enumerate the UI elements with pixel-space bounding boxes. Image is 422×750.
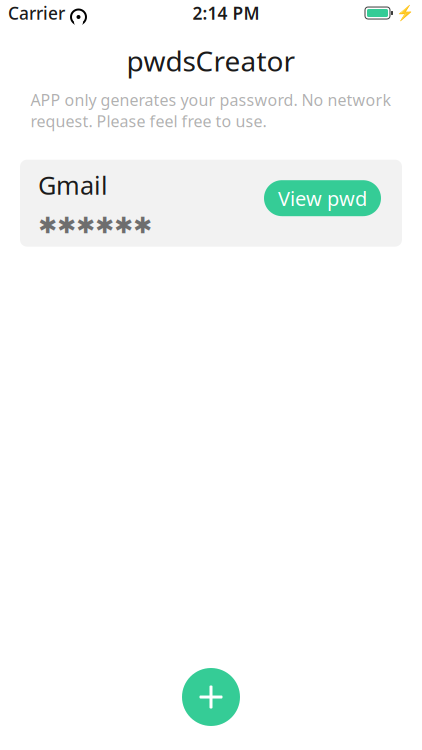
- staticText: View pwd: [278, 185, 367, 211]
- staticText: ✱✱✱✱✱✱: [38, 213, 152, 238]
- staticText: ⚡: [396, 5, 414, 21]
- button[interactable]: Add password: [182, 668, 240, 726]
- button[interactable]: View pwd: [264, 180, 381, 216]
- staticText: Gmail: [38, 168, 108, 202]
- staticText: 2:14 PM: [192, 1, 259, 24]
- staticText: Carrier: [8, 1, 65, 24]
- staticText: APP only generates your password. No net…: [30, 89, 391, 132]
- staticText: pwdsCreator: [126, 42, 295, 79]
